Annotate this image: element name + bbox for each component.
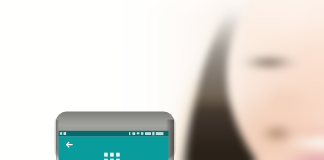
- button[interactable]: Phone showing app home screen: [0, 0, 324, 160]
